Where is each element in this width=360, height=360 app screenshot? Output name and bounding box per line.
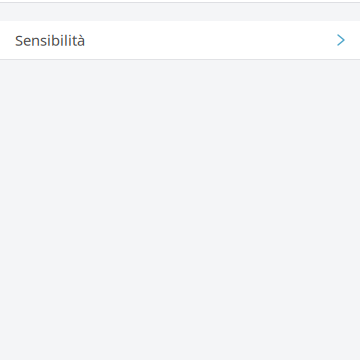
staticText: Sensibilità xyxy=(15,30,85,50)
button[interactable]: Sensibilità xyxy=(0,21,360,59)
